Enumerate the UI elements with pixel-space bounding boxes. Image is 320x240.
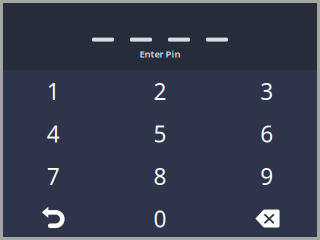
staticText: 8 [153,161,166,191]
button[interactable]: 3 [213,70,320,112]
staticText: 4 [47,119,60,149]
staticText: 9 [260,161,273,191]
button[interactable]: 7 [0,155,107,197]
button[interactable]: 9 [213,155,320,197]
button[interactable]: 8 [107,155,213,197]
staticText: 5 [153,119,166,149]
button[interactable]: Undo [0,197,107,240]
staticText: 2 [153,76,166,106]
button[interactable]: 4 [0,112,107,155]
button[interactable]: Delete [213,197,320,240]
button[interactable]: 2 [107,70,213,112]
button[interactable]: 0 [107,197,213,240]
staticText: 0 [153,204,166,234]
staticText: 1 [47,76,60,106]
button[interactable]: 1 [0,70,107,112]
button[interactable]: 6 [213,112,320,155]
staticText: 7 [47,161,60,191]
button[interactable]: 5 [107,112,213,155]
staticText: 3 [260,76,273,106]
staticText: Enter Pin [139,48,180,60]
staticText: 6 [260,119,273,149]
